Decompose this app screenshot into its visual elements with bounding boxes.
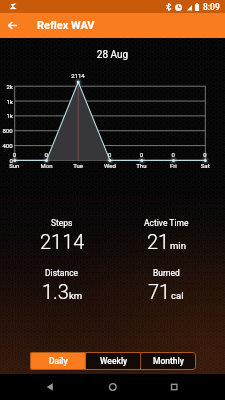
- staticText: 28 Aug: [0, 49, 225, 61]
- button[interactable]: Back: [0, 13, 25, 38]
- staticText: 71: [148, 280, 171, 303]
- staticText: Active Time: [144, 218, 189, 228]
- button[interactable]: Weekly: [86, 352, 141, 370]
- staticText: Burned: [153, 268, 180, 278]
- staticText: Reflex WAV: [37, 19, 95, 32]
- staticText: Weekly: [100, 356, 128, 366]
- staticText: min: [170, 240, 186, 251]
- staticText: 2114: [40, 230, 85, 253]
- staticText: Daily: [49, 356, 68, 366]
- staticText: Monthly: [153, 356, 184, 366]
- button[interactable]: Monthly: [141, 352, 196, 370]
- staticText: Distance: [45, 268, 79, 278]
- staticText: km: [69, 290, 83, 301]
- staticText: 8:09: [203, 2, 220, 12]
- button[interactable]: Daily: [30, 352, 86, 370]
- staticText: 1.3: [42, 280, 69, 303]
- staticText: 21: [147, 230, 170, 253]
- staticText: Steps: [51, 218, 73, 228]
- staticText: cal: [171, 290, 184, 301]
